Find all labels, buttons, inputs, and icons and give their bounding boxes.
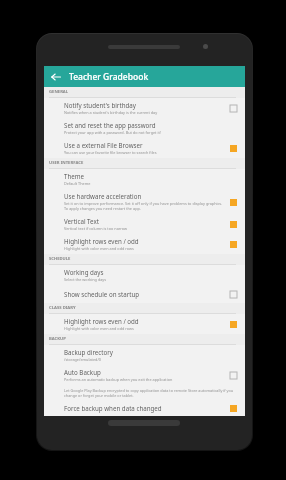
staticText: GENERAL — [49, 89, 69, 95]
button[interactable]: Highlight rows even / odd — [44, 234, 245, 254]
staticText: Highlight with color even and odd rows — [64, 326, 134, 331]
button[interactable]: Auto Backup — [44, 365, 245, 385]
staticText: Highlight rows even / odd — [64, 237, 139, 245]
button[interactable]: Working days — [44, 265, 245, 285]
button[interactable]: Disabled — [227, 102, 239, 114]
staticText: Performs an automatic backup when you ex… — [64, 377, 173, 382]
staticText: Teacher Gradebook — [69, 71, 149, 83]
staticText: Protect your app with a password. But do… — [64, 130, 161, 135]
staticText: Use a external File Browser — [64, 141, 143, 149]
button[interactable]: Enabled — [227, 318, 239, 330]
staticText: Notify student's birthday — [64, 101, 136, 109]
staticText: You can use your favorite file browser t… — [64, 150, 157, 155]
button[interactable]: Theme — [44, 169, 245, 189]
button[interactable]: Disabled — [227, 288, 239, 300]
staticText: Notifies when a student's birthday is th… — [64, 110, 158, 115]
button[interactable]: Enabled — [227, 238, 239, 250]
button[interactable]: Use hardware acceleration — [44, 189, 245, 214]
staticText: /storage/emulated/0 — [64, 357, 101, 362]
staticText: Default Theme — [64, 181, 91, 186]
button[interactable]: Enabled — [227, 196, 239, 208]
button[interactable]: Notify student's birthday — [44, 98, 245, 118]
staticText: USER INTERFACE — [49, 160, 84, 166]
staticText: SCHEDULE — [49, 256, 71, 262]
button[interactable]: Backup directory — [44, 345, 245, 365]
staticText: Vertical text if column is too narrow — [64, 226, 128, 231]
button[interactable]: Enabled — [227, 218, 239, 230]
button[interactable]: Enabled — [227, 142, 239, 154]
staticText: Highlight with color even and odd rows — [64, 246, 134, 251]
button[interactable]: Disabled — [227, 369, 239, 381]
staticText: Backup directory — [64, 348, 113, 356]
button[interactable]: Highlight rows even / odd — [44, 314, 245, 334]
button[interactable]: Back — [48, 69, 64, 85]
staticText: Set it on to improve performance. Set it… — [64, 201, 223, 211]
staticText: Working days — [64, 268, 104, 276]
button[interactable]: Vertical Text — [44, 214, 245, 234]
button[interactable]: Use a external File Browser — [44, 138, 245, 158]
button[interactable]: Enabled — [227, 404, 239, 413]
staticText: Vertical Text — [64, 217, 99, 225]
staticText: Auto Backup — [64, 368, 101, 376]
button[interactable]: Force backup when data changed — [44, 401, 245, 416]
staticText: Use hardware acceleration — [64, 192, 142, 200]
staticText: Highlight rows even / odd — [64, 317, 139, 325]
staticText: Select the working days — [64, 277, 107, 282]
staticText: Let Google Play Backup encrypted to copy… — [64, 388, 235, 398]
button[interactable]: Show schedule on startup — [44, 285, 245, 303]
staticText: Show schedule on startup — [64, 290, 140, 298]
staticText: Force backup when data changed — [64, 404, 162, 412]
staticText: BACKUP — [49, 336, 66, 342]
staticText: CLASS DIARY — [49, 305, 76, 311]
staticText: Theme — [64, 172, 85, 180]
staticText: Set and reset the app password — [64, 121, 156, 129]
button[interactable]: Set and reset the app password — [44, 118, 245, 138]
